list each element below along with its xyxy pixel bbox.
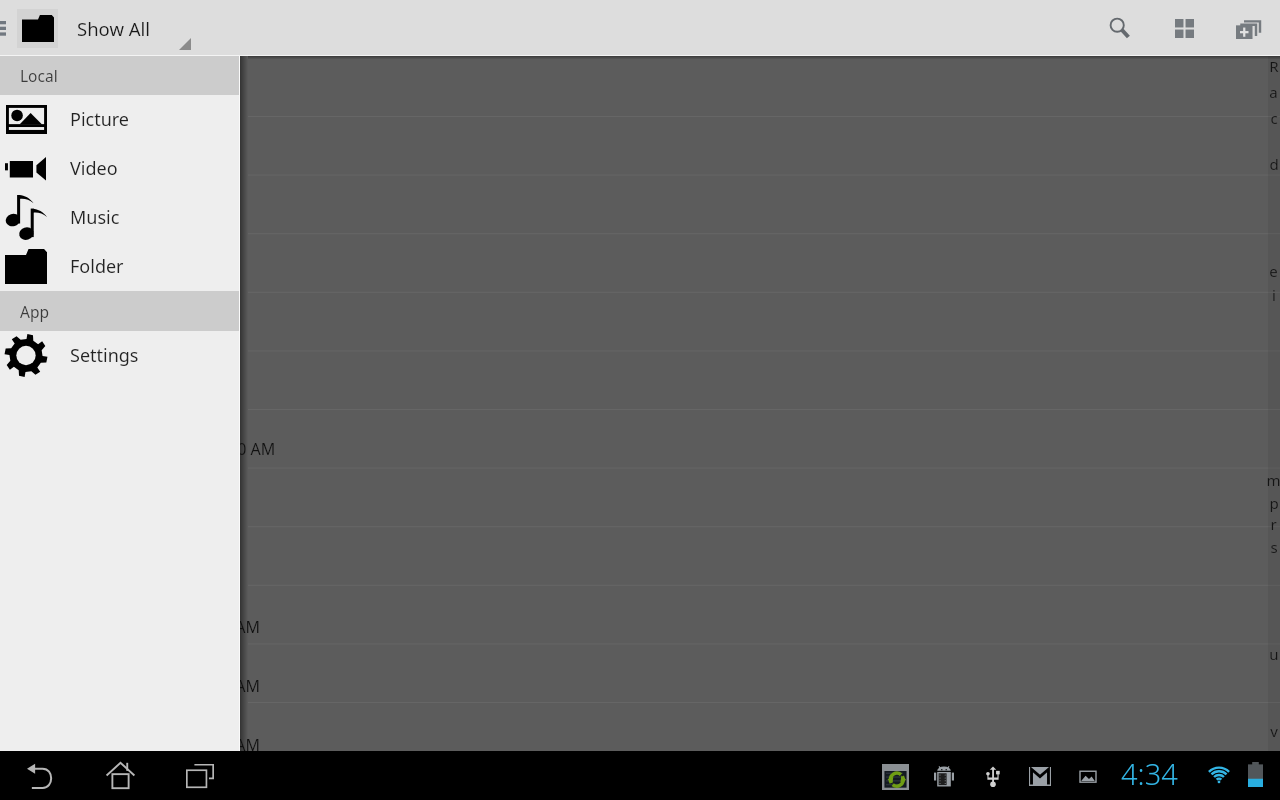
staticText: p — [1269, 493, 1279, 512]
staticText: Settings — [70, 343, 139, 368]
staticText: Local — [20, 65, 58, 86]
staticText: a — [1269, 82, 1278, 101]
staticText: Music — [70, 205, 120, 230]
staticText: 5 AM — [222, 675, 261, 695]
button[interactable]: Recents — [160, 751, 240, 800]
button[interactable]: New window — [1216, 0, 1280, 56]
button[interactable]: Show all files — [17, 9, 58, 48]
staticText: v — [1270, 721, 1278, 740]
staticText: Video — [70, 156, 118, 181]
staticText: 4:34 — [1121, 754, 1178, 793]
staticText: s — [1270, 537, 1278, 556]
button[interactable]: Home — [80, 751, 160, 800]
button[interactable]: Open navigation drawer — [0, 0, 6, 56]
staticText: r — [1270, 514, 1277, 533]
staticText: 4 AM — [222, 734, 261, 754]
button[interactable]: Grid view — [1152, 0, 1216, 56]
staticText: App — [20, 301, 49, 322]
button[interactable]: Search — [1088, 0, 1152, 56]
button[interactable]: Music — [0, 193, 240, 242]
staticText: Show All — [77, 16, 151, 41]
staticText: 1 AM — [222, 616, 261, 636]
staticText: R — [1269, 56, 1279, 75]
staticText: Folder — [70, 254, 124, 279]
staticText: c — [1270, 108, 1278, 127]
staticText: d — [1269, 154, 1279, 173]
staticText: u — [1269, 644, 1279, 663]
staticText: Picture — [70, 107, 130, 132]
button[interactable]: Picture — [0, 95, 240, 144]
staticText: i — [1272, 285, 1276, 304]
button[interactable]: Video — [0, 144, 240, 193]
staticText: e — [1269, 261, 1278, 280]
button[interactable]: Show All — [77, 0, 201, 56]
staticText: m — [1266, 470, 1280, 489]
button[interactable]: Settings — [0, 331, 240, 380]
staticText: 10 AM — [228, 438, 276, 458]
button[interactable]: Folder — [0, 242, 240, 291]
button[interactable]: Back — [0, 751, 80, 800]
